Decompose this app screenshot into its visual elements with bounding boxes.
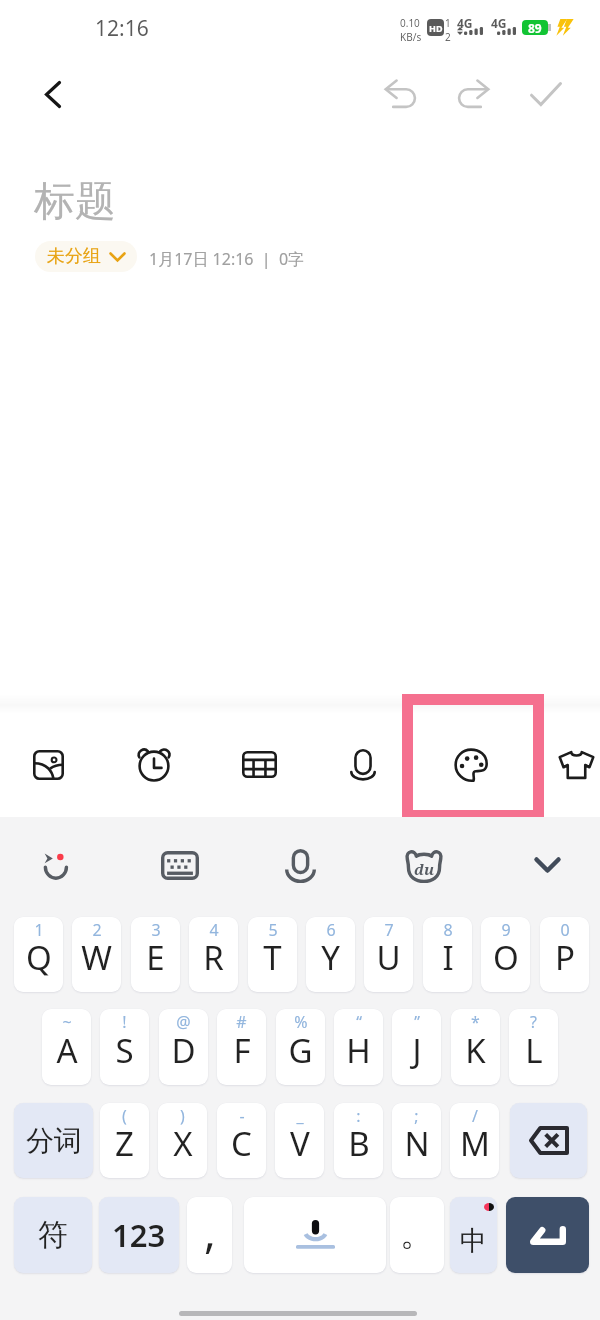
button[interactable]: ; <box>392 1103 441 1178</box>
button[interactable]: 中 <box>450 1197 497 1273</box>
button[interactable]: Keyboard layout <box>138 836 222 894</box>
button[interactable]: Style <box>419 712 523 817</box>
button[interactable]: @ <box>159 1009 208 1085</box>
button[interactable]: # <box>217 1009 266 1085</box>
staticText: B <box>348 1121 370 1166</box>
staticText: 9 <box>501 919 511 941</box>
staticText: C <box>231 1121 252 1166</box>
button[interactable]: Voice input <box>311 712 415 817</box>
button[interactable]: Back <box>29 70 77 118</box>
button[interactable]: Enter <box>506 1197 589 1273</box>
button[interactable]: 分词 <box>14 1103 93 1178</box>
button[interactable]: 2 <box>72 917 121 992</box>
button[interactable]: 9 <box>481 917 530 992</box>
button[interactable]: _ <box>275 1103 324 1178</box>
staticText: * <box>471 1011 480 1033</box>
staticText: 1 <box>34 919 44 941</box>
staticText: ? <box>530 1011 537 1033</box>
button[interactable]: 4 <box>189 917 238 992</box>
button[interactable]: 未分组 <box>35 241 137 272</box>
button[interactable]: 3 <box>131 917 180 992</box>
button[interactable]: ? <box>509 1009 558 1085</box>
staticText: W <box>81 935 112 980</box>
staticText: V <box>290 1121 310 1166</box>
staticText: 0.10 <box>400 16 420 30</box>
staticText: ( <box>122 1105 127 1127</box>
staticText: 89 <box>528 20 542 35</box>
staticText: ~ <box>62 1011 72 1033</box>
staticText: HD <box>429 22 443 34</box>
button[interactable]: Space <box>244 1197 386 1273</box>
button[interactable]: / <box>450 1103 499 1178</box>
button[interactable]: Redo <box>450 70 498 118</box>
staticText: 4G <box>457 15 473 31</box>
button[interactable]: , <box>187 1197 232 1273</box>
button[interactable]: Emoji <box>19 836 103 894</box>
staticText: 12:16 <box>95 14 149 43</box>
button[interactable]: Voice input <box>258 836 342 894</box>
staticText: 中 <box>460 1224 487 1258</box>
button[interactable]: 符 <box>14 1197 92 1273</box>
staticText: N <box>404 1121 430 1166</box>
button[interactable]: “ <box>334 1009 383 1085</box>
staticText: : <box>356 1105 361 1127</box>
staticText: R <box>203 935 224 980</box>
staticText: ” <box>414 1011 420 1033</box>
button[interactable]: ! <box>100 1009 149 1085</box>
staticText: - <box>239 1105 245 1127</box>
button[interactable]: ) <box>158 1103 207 1178</box>
button[interactable]: 0 <box>540 917 589 992</box>
button[interactable]: Insert image <box>0 712 100 817</box>
staticText: ) <box>180 1105 185 1127</box>
button[interactable]: : <box>334 1103 383 1178</box>
staticText: # <box>236 1011 247 1033</box>
button[interactable]: ” <box>392 1009 441 1085</box>
button[interactable]: Backspace <box>510 1103 587 1178</box>
button[interactable]: Undo <box>376 70 424 118</box>
staticText: / <box>472 1105 478 1127</box>
button[interactable]: ( <box>100 1103 149 1178</box>
button[interactable]: Baidu IME <box>382 836 466 894</box>
staticText: S <box>115 1028 134 1073</box>
staticText: T <box>263 935 282 980</box>
button[interactable]: 123 <box>99 1197 179 1273</box>
button[interactable]: 1 <box>14 917 63 992</box>
button[interactable]: Done <box>522 70 570 118</box>
staticText: 。 <box>400 1212 434 1255</box>
button[interactable]: 8 <box>423 917 472 992</box>
staticText: H <box>346 1028 371 1073</box>
button[interactable]: * <box>451 1009 500 1085</box>
button[interactable]: Reminder <box>102 712 206 817</box>
staticText: @ <box>176 1011 191 1033</box>
staticText: I <box>442 935 454 980</box>
staticText: “ <box>356 1011 362 1033</box>
staticText: 标题 <box>34 176 116 228</box>
staticText: G <box>288 1028 313 1073</box>
staticText: F <box>233 1028 251 1073</box>
staticText: A <box>56 1028 78 1073</box>
staticText: L <box>525 1028 543 1073</box>
staticText: X <box>173 1121 193 1166</box>
staticText: Y <box>321 935 340 980</box>
staticText: 2 <box>445 30 451 44</box>
button[interactable]: 。 <box>390 1197 444 1273</box>
button[interactable]: 5 <box>248 917 297 992</box>
staticText: 123 <box>112 1214 166 1256</box>
button[interactable]: 6 <box>306 917 355 992</box>
button[interactable]: 7 <box>364 917 413 992</box>
button[interactable]: Table <box>207 712 311 817</box>
staticText: O <box>493 935 519 980</box>
staticText: M <box>460 1121 490 1166</box>
staticText: 3 <box>151 919 161 941</box>
staticText: 4 <box>209 919 219 941</box>
button[interactable]: Hide keyboard <box>505 836 589 894</box>
button[interactable]: ~ <box>42 1009 91 1085</box>
button[interactable]: Skin <box>524 712 600 817</box>
staticText: P <box>555 935 575 980</box>
staticText: Z <box>115 1121 134 1166</box>
button[interactable]: % <box>276 1009 325 1085</box>
staticText: du <box>414 859 435 879</box>
staticText: 未分组 <box>47 245 101 268</box>
staticText: ; <box>414 1105 419 1127</box>
button[interactable]: - <box>217 1103 266 1178</box>
